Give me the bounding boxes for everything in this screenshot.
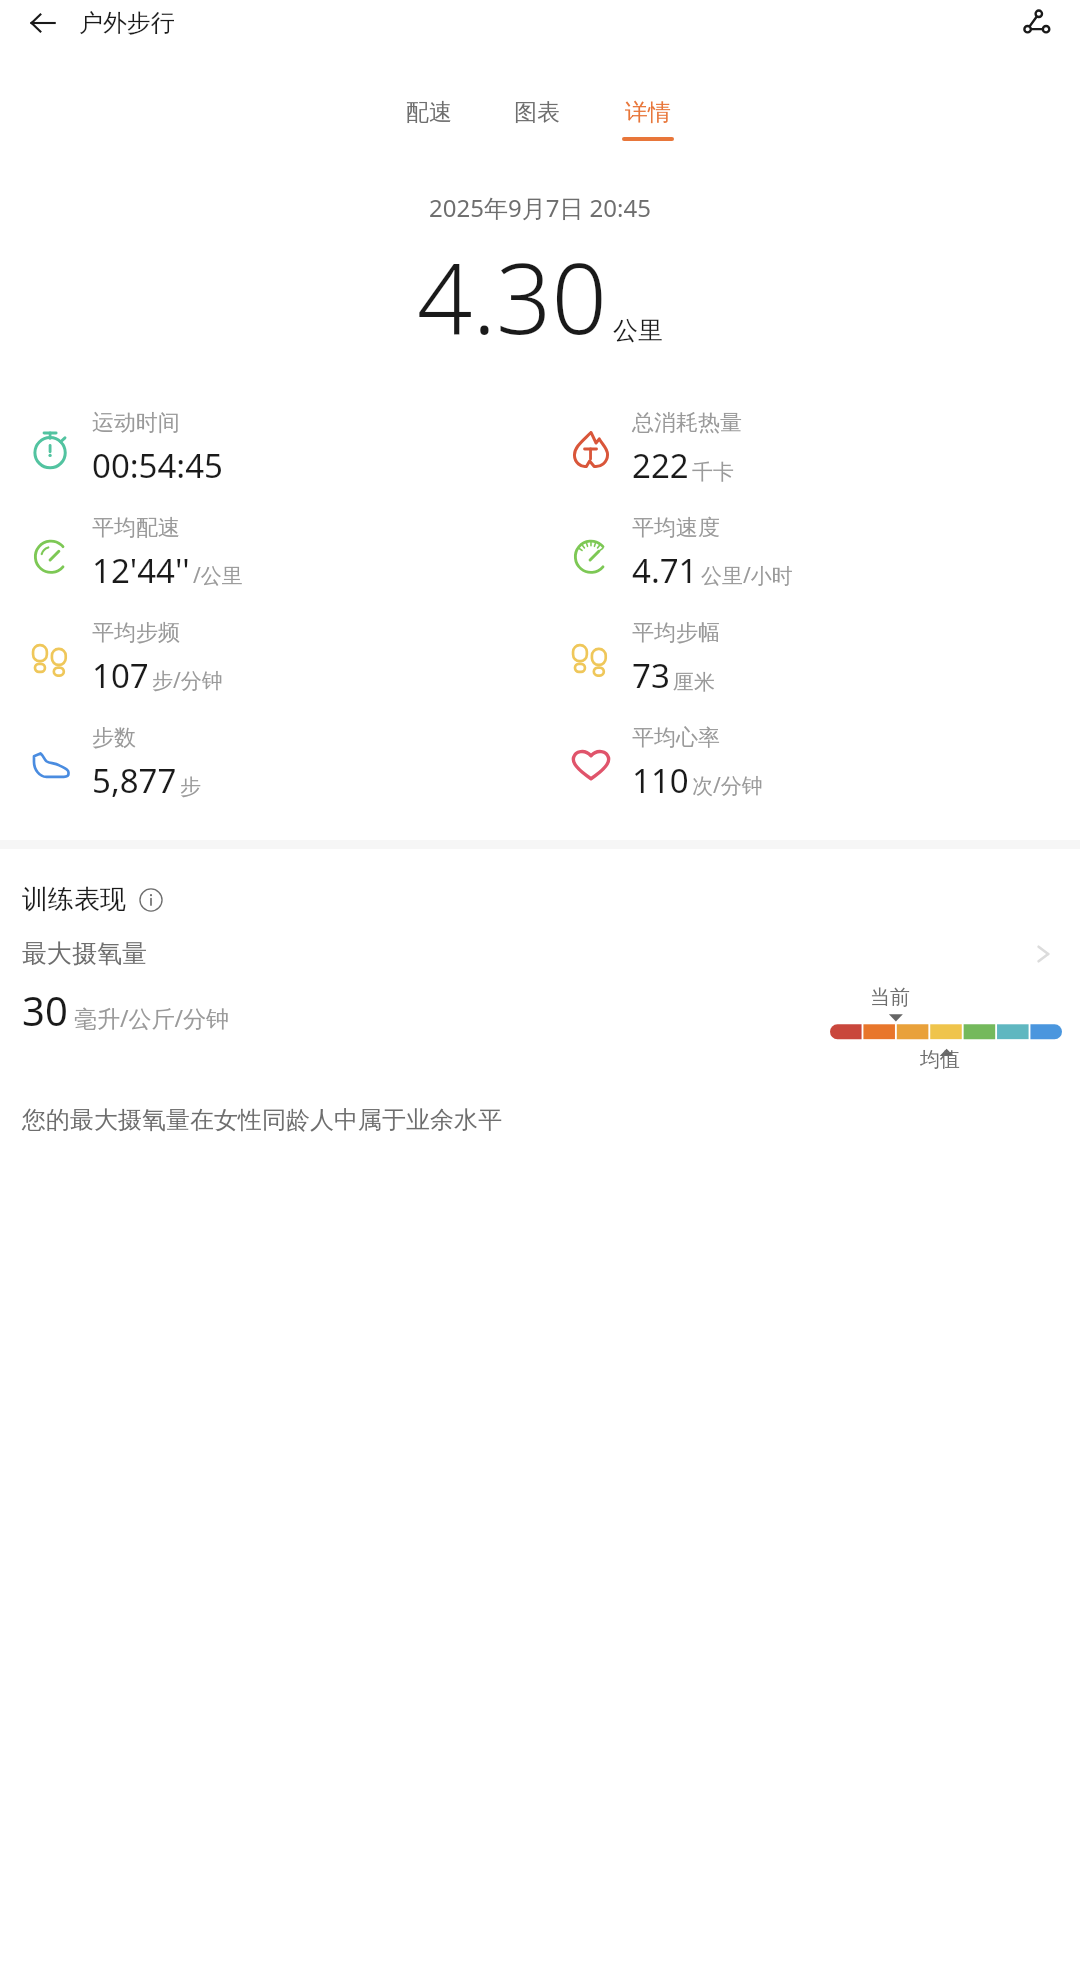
staticText: 4.71 xyxy=(632,548,698,593)
staticText: 73 xyxy=(632,653,670,698)
staticText: /公里 xyxy=(193,561,243,590)
staticText: 平均步幅 xyxy=(632,619,720,647)
staticText: 次/分钟 xyxy=(692,771,763,800)
button[interactable]: 平均速度 xyxy=(540,501,1080,606)
button[interactable]: 平均心率 xyxy=(540,711,1080,816)
button[interactable]: Info xyxy=(136,885,166,915)
button[interactable]: 图表 xyxy=(506,94,568,141)
button[interactable]: Share xyxy=(1013,0,1059,46)
staticText: 107 xyxy=(92,653,149,698)
staticText: 平均配速 xyxy=(92,514,180,542)
staticText: 12'44'' xyxy=(92,548,190,593)
staticText: 00:54:45 xyxy=(92,443,223,488)
button[interactable]: 配速 xyxy=(398,94,460,141)
button[interactable]: 平均步频 xyxy=(0,606,540,711)
staticText: 110 xyxy=(632,758,689,803)
staticText: 公里/小时 xyxy=(701,561,793,590)
staticText: 均值 xyxy=(920,1047,960,1072)
button[interactable]: 平均配速 xyxy=(0,501,540,606)
button[interactable]: Back xyxy=(21,1,65,45)
staticText: 公里 xyxy=(613,315,663,346)
staticText: 222 xyxy=(632,443,689,488)
staticText: 步数 xyxy=(92,724,136,752)
staticText: 毫升/公斤/分钟 xyxy=(74,1002,230,1033)
staticText: 户外步行 xyxy=(79,8,175,38)
button[interactable]: 详情 xyxy=(614,94,682,145)
staticText: 当前 xyxy=(870,985,910,1010)
staticText: 4.30 xyxy=(417,230,607,362)
staticText: 详情 xyxy=(625,98,671,127)
staticText: 30 xyxy=(22,983,68,1037)
staticText: 2025年9月7日 20:45 xyxy=(429,191,651,224)
staticText: 厘米 xyxy=(673,669,715,695)
button[interactable]: 平均步幅 xyxy=(540,606,1080,711)
button[interactable]: 运动时间 xyxy=(0,396,540,501)
staticText: 步 xyxy=(180,774,201,800)
staticText: 平均步频 xyxy=(92,619,180,647)
staticText: 运动时间 xyxy=(92,409,180,437)
staticText: 总消耗热量 xyxy=(632,409,742,437)
staticText: 步/分钟 xyxy=(152,666,223,695)
staticText: 配速 xyxy=(406,98,452,127)
staticText: 千卡 xyxy=(692,459,734,485)
staticText: 最大摄氧量 xyxy=(22,938,147,969)
button[interactable]: 最大摄氧量 xyxy=(0,938,1080,969)
staticText: 您的最大摄氧量在女性同龄人中属于业余水平 xyxy=(22,1105,502,1135)
button[interactable]: 步数 xyxy=(0,711,540,816)
staticText: 图表 xyxy=(514,98,560,127)
staticText: 训练表现 xyxy=(22,883,126,916)
staticText: 平均心率 xyxy=(632,724,720,752)
button[interactable]: 总消耗热量 xyxy=(540,396,1080,501)
staticText: 5,877 xyxy=(92,758,177,803)
staticText: 平均速度 xyxy=(632,514,720,542)
